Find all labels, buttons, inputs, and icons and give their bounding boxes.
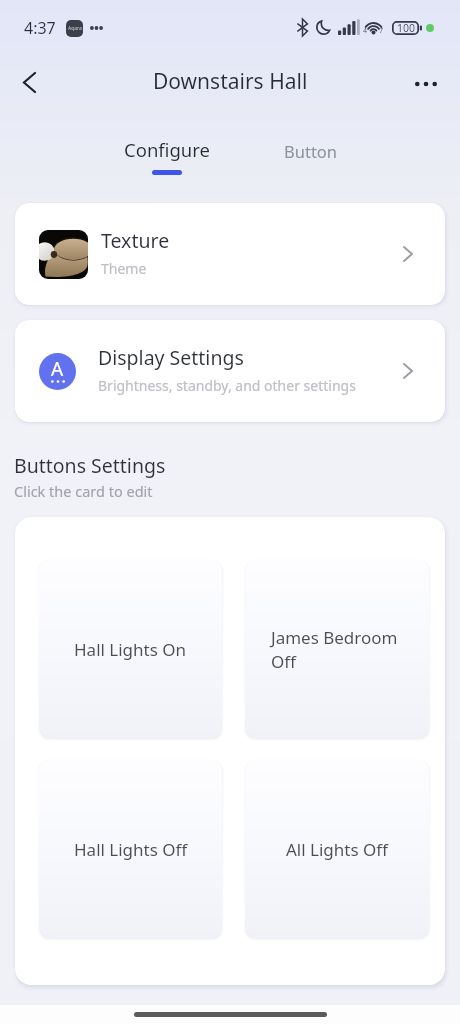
- staticText: Hall Lights Off: [74, 838, 188, 861]
- button[interactable]: Texture: [15, 203, 445, 305]
- staticText: Theme: [101, 259, 147, 278]
- staticText: 4: [363, 26, 368, 36]
- staticText: Click the card to edit: [14, 481, 153, 501]
- staticText: Texture: [101, 227, 170, 254]
- staticText: Configure: [124, 137, 210, 162]
- staticText: Display Settings: [98, 344, 244, 371]
- button[interactable]: James Bedroom Off: [245, 560, 429, 738]
- staticText: Downstairs Hall: [153, 67, 308, 96]
- staticText: 100: [397, 21, 416, 35]
- button[interactable]: More options: [404, 62, 448, 106]
- staticText: James Bedroom Off: [271, 626, 403, 673]
- staticText: Buttons Settings: [14, 452, 166, 479]
- staticText: All Lights Off: [286, 838, 388, 861]
- staticText: 7: [379, 26, 384, 36]
- button[interactable]: Button: [262, 137, 359, 165]
- staticText: Hall Lights On: [74, 638, 187, 661]
- button[interactable]: Back: [9, 62, 49, 102]
- button[interactable]: Configure: [115, 134, 219, 178]
- button[interactable]: A: [15, 320, 445, 422]
- staticText: Button: [284, 140, 338, 162]
- staticText: 4:37: [24, 17, 56, 39]
- staticText: Brightness, standby, and other settings: [98, 376, 356, 395]
- button[interactable]: All Lights Off: [245, 760, 429, 938]
- staticText: Aqara: [68, 25, 82, 32]
- button[interactable]: Hall Lights On: [39, 560, 222, 738]
- button[interactable]: Hall Lights Off: [39, 760, 222, 938]
- staticText: A: [51, 356, 64, 382]
